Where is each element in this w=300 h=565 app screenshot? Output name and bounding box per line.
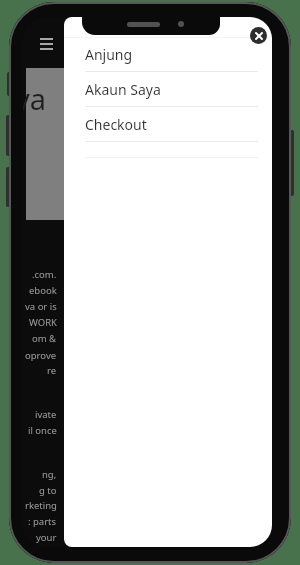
- staticText: Anjung: [85, 45, 133, 64]
- button[interactable]: Anjung: [64, 37, 272, 71]
- staticText: WORK: [29, 316, 57, 329]
- staticText: g to: [39, 484, 57, 497]
- staticText: your: [36, 531, 57, 544]
- staticText: ya: [23, 79, 47, 118]
- staticText: Checkout: [85, 115, 147, 134]
- staticText: re: [47, 364, 57, 377]
- staticText: va or is: [25, 300, 57, 313]
- button[interactable]: [250, 27, 267, 44]
- button[interactable]: Akaun Saya: [64, 72, 272, 106]
- staticText: rketing: [25, 499, 57, 512]
- staticText: om &: [32, 332, 57, 345]
- staticText: ebook: [29, 284, 57, 297]
- staticText: ng,: [42, 468, 57, 481]
- button[interactable]: Checkout: [64, 107, 272, 141]
- staticText: .com.: [32, 268, 57, 281]
- staticText: ivate: [35, 408, 57, 421]
- staticText: Akaun Saya: [85, 80, 161, 99]
- staticText: oprove: [25, 349, 57, 362]
- staticText: il once: [28, 424, 57, 437]
- button[interactable]: [40, 38, 53, 50]
- staticText: : parts: [28, 515, 57, 528]
